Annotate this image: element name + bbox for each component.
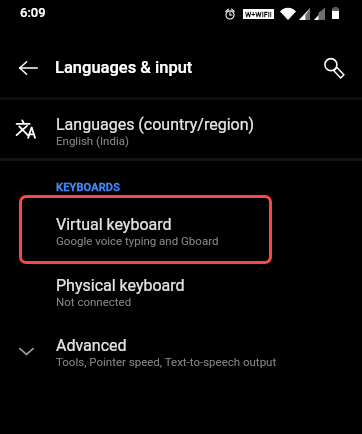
button[interactable]: Physical keyboard — [0, 265, 362, 323]
button[interactable]: Virtual keyboard — [0, 204, 362, 262]
button[interactable]: Advanced — [0, 325, 362, 383]
button[interactable]: Navigate up — [11, 51, 45, 85]
staticText: KEYBOARDS — [56, 181, 121, 194]
staticText: Advanced — [56, 336, 127, 355]
staticText: Google voice typing and Gboard — [56, 234, 219, 247]
staticText: Languages & input — [55, 58, 193, 77]
staticText: 6:09 — [20, 5, 46, 20]
button[interactable]: Search — [318, 52, 350, 84]
staticText: W+WIFI! — [245, 10, 272, 18]
staticText: Tools, Pointer speed, Text-to-speech out… — [56, 355, 277, 368]
staticText: English (India) — [56, 134, 130, 147]
staticText: Physical keyboard — [56, 276, 185, 295]
staticText: Virtual keyboard — [56, 215, 172, 234]
button[interactable]: Languages (country/region) — [0, 104, 362, 162]
staticText: Not connected — [56, 295, 132, 308]
staticText: Languages (country/region) — [56, 115, 255, 134]
